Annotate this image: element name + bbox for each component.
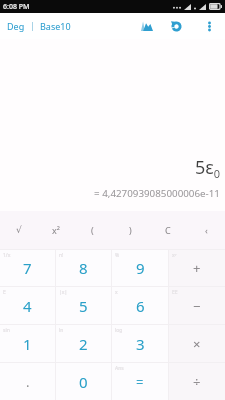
button[interactable]: x² <box>37 211 74 249</box>
staticText: 2 <box>79 334 88 354</box>
staticText: E <box>3 289 6 296</box>
staticText: √ <box>16 225 22 235</box>
staticText: × <box>193 335 201 353</box>
button[interactable]: E <box>0 287 55 324</box>
button[interactable]: % <box>112 250 168 286</box>
button[interactable]: EE <box>169 287 225 324</box>
button[interactable]: √ <box>0 211 37 249</box>
staticText: ‹ <box>205 224 208 236</box>
button[interactable]: Ans <box>112 363 168 400</box>
staticText: 0 <box>79 372 88 392</box>
staticText: C <box>165 224 171 236</box>
button[interactable]: 1/x <box>0 250 55 286</box>
staticText: 8 <box>79 258 88 278</box>
staticText: − <box>193 297 201 315</box>
staticText: 5 <box>79 296 88 316</box>
staticText: = <box>136 373 144 391</box>
staticText: n! <box>59 252 64 259</box>
button[interactable]: ( <box>74 211 111 249</box>
staticText: EE <box>172 289 178 296</box>
button[interactable]: |x| <box>56 287 111 324</box>
staticText: 6:08 PM <box>3 2 30 12</box>
staticText: xʸ <box>172 252 177 259</box>
button[interactable]: ÷ <box>169 363 225 400</box>
button[interactable]: ‹ <box>187 211 225 249</box>
staticText: = 4,4270939085000006e-11 <box>94 187 220 200</box>
staticText: Ans <box>115 365 124 372</box>
staticText: % <box>115 252 120 259</box>
button[interactable]: ) <box>111 211 149 249</box>
staticText: + <box>193 259 201 277</box>
button[interactable]: ln <box>56 325 111 362</box>
staticText: ln <box>59 327 64 334</box>
staticText: 5ε0 <box>195 155 221 181</box>
staticText: 6 <box>136 296 145 316</box>
button[interactable]: 0 <box>56 363 111 400</box>
staticText: 3 <box>136 334 145 354</box>
button[interactable]: xʸ <box>169 250 225 286</box>
staticText: log <box>115 327 123 334</box>
button[interactable]: sin <box>0 325 55 362</box>
staticText: ) <box>129 224 132 236</box>
button[interactable]: log <box>112 325 168 362</box>
button[interactable]: n! <box>56 250 111 286</box>
staticText: x <box>115 289 118 296</box>
staticText: sin <box>3 327 10 334</box>
staticText: 4 <box>23 296 32 316</box>
button[interactable]: x <box>112 287 168 324</box>
button[interactable]: Deg <box>4 15 28 37</box>
button[interactable]: . <box>0 363 55 400</box>
button[interactable]: More options <box>196 13 222 39</box>
staticText: ÷ <box>193 373 201 391</box>
staticText: Deg <box>7 20 25 32</box>
staticText: . <box>26 373 30 391</box>
staticText: 1 <box>23 334 32 354</box>
staticText: 7 <box>23 258 32 278</box>
button[interactable]: History <box>163 13 189 39</box>
staticText: 1/x <box>3 252 11 259</box>
button[interactable]: Graph <box>134 13 160 39</box>
button[interactable]: × <box>169 325 225 362</box>
button[interactable]: Base10 <box>37 15 74 37</box>
staticText: ( <box>91 224 94 236</box>
staticText: x² <box>52 224 60 236</box>
staticText: Base10 <box>40 20 71 32</box>
staticText: 9 <box>136 258 145 278</box>
button[interactable]: C <box>149 211 187 249</box>
staticText: |x| <box>59 289 68 296</box>
